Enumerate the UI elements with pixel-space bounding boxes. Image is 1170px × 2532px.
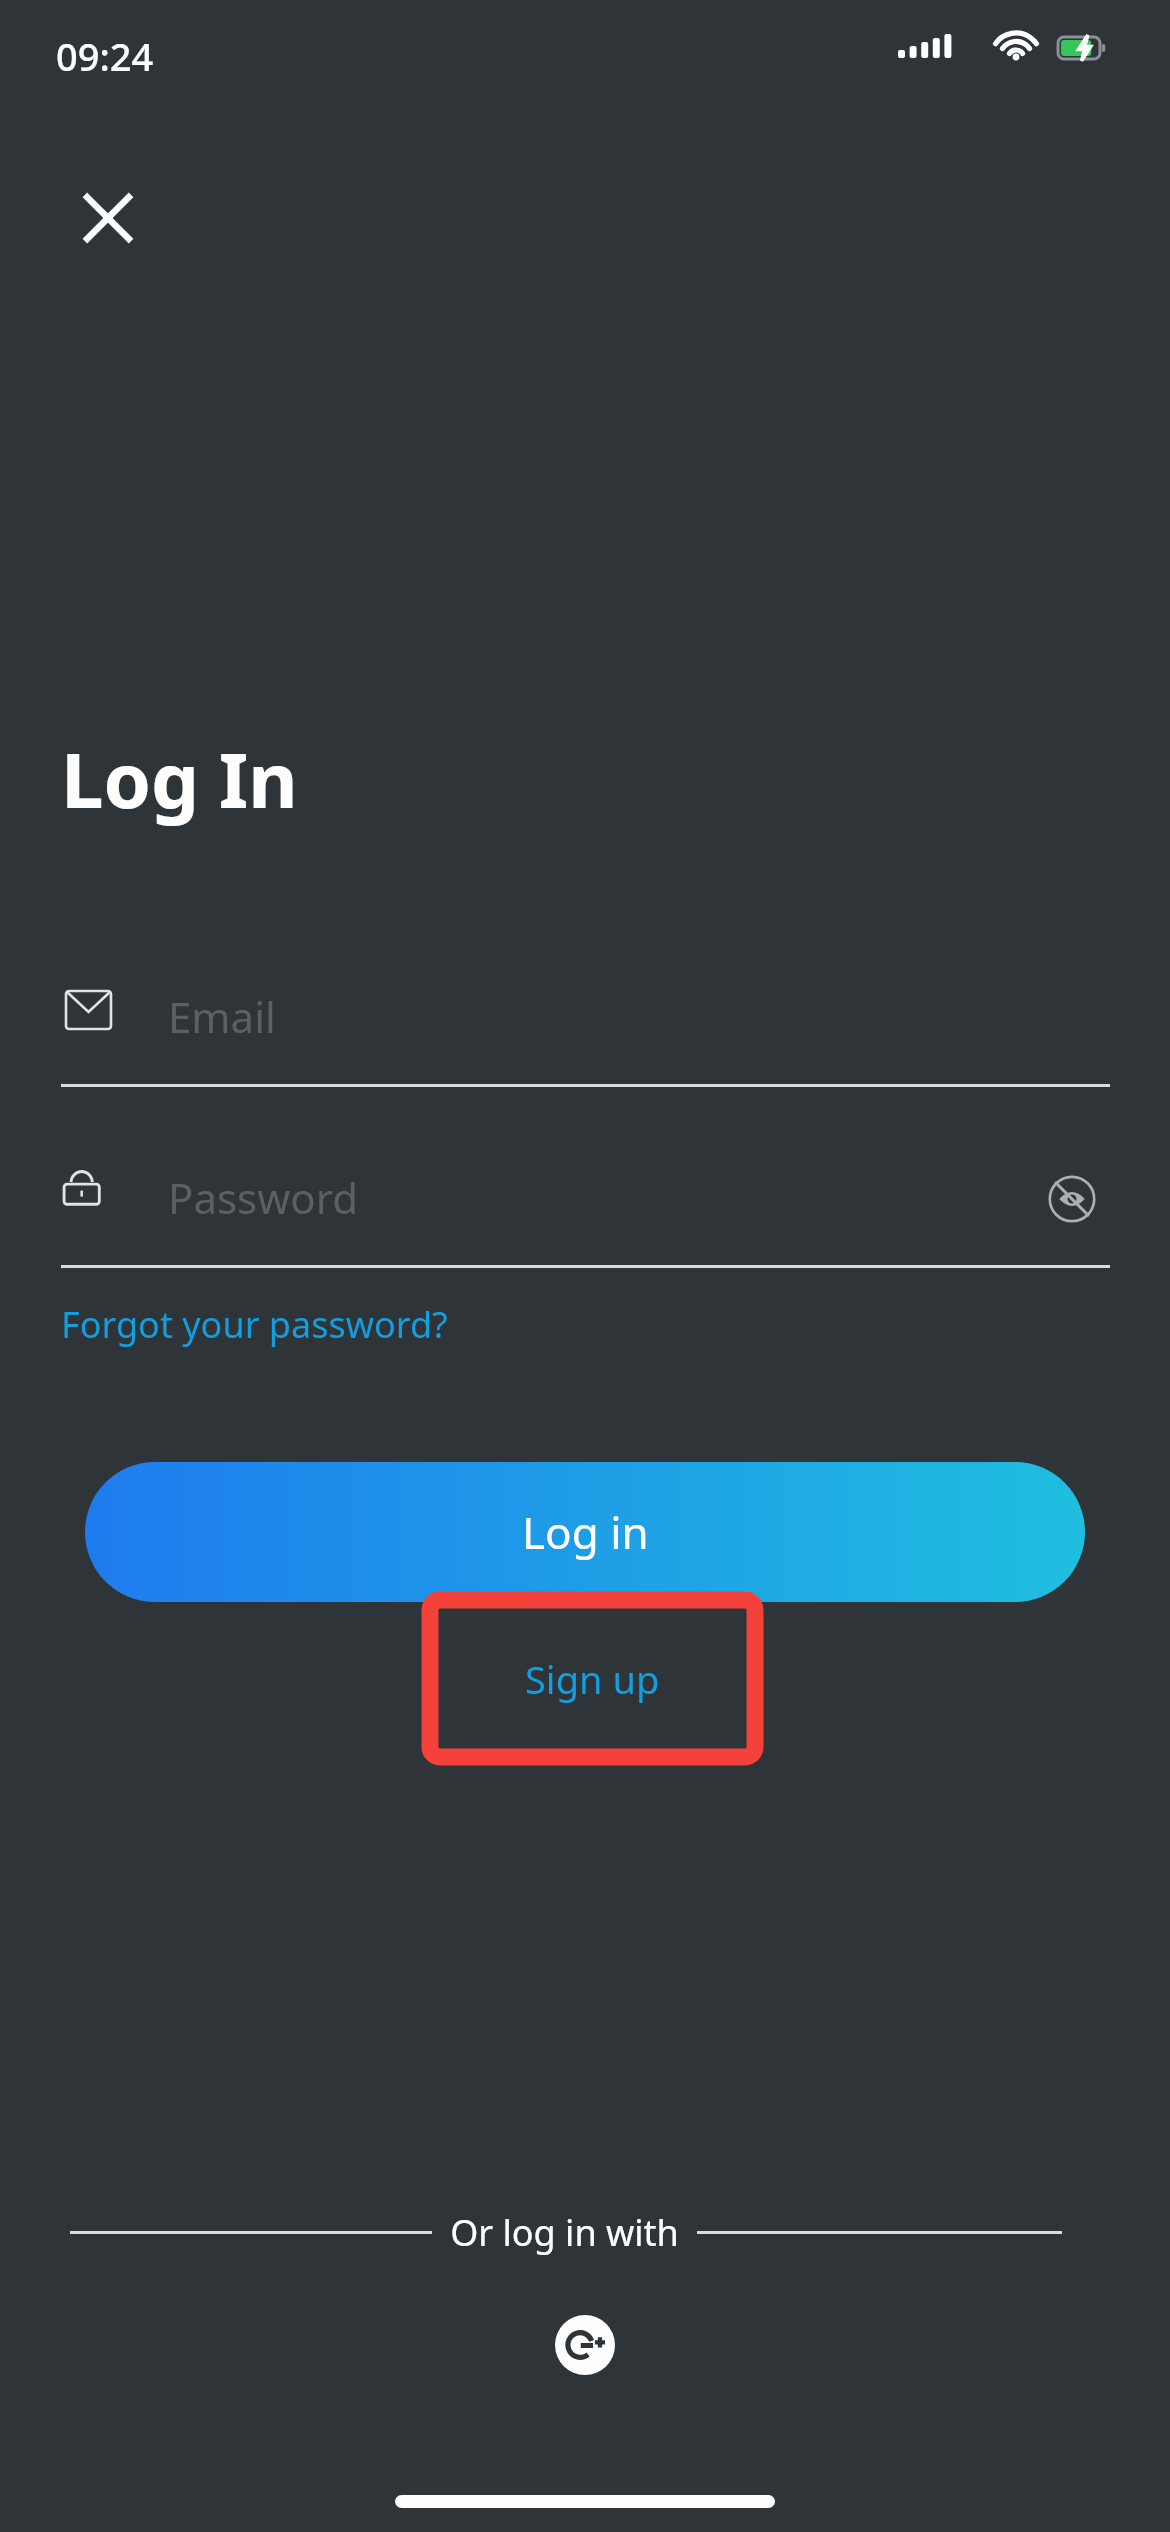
staticText: 09:24 [56, 30, 154, 82]
staticText: Sign up [525, 1653, 660, 1705]
button[interactable]: Log in [85, 1462, 1085, 1602]
button[interactable]: Password [61, 1155, 1110, 1268]
button[interactable]: Close [72, 182, 144, 254]
button[interactable]: Email [61, 975, 1110, 1087]
button[interactable]: Forgot your password? [61, 1300, 448, 1349]
staticText: Forgot your password? [61, 1300, 448, 1349]
button[interactable]: Sign up [430, 1600, 755, 1757]
staticText: Log in [522, 1502, 649, 1562]
staticText: Password [168, 1169, 358, 1226]
button[interactable]: Show password [1042, 1169, 1102, 1229]
staticText: Email [168, 988, 276, 1045]
staticText: Log In [61, 727, 298, 831]
button[interactable]: Log in with Google [555, 2315, 615, 2375]
staticText: Or log in with [432, 2208, 697, 2256]
